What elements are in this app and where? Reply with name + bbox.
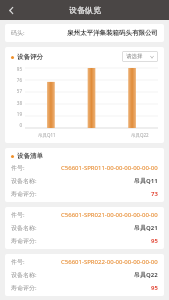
staticText: 95 — [151, 237, 158, 245]
staticText: 38 — [16, 100, 22, 106]
staticText: 95 — [16, 66, 22, 72]
staticText: 件号: — [11, 164, 25, 172]
staticText: 寿命评分: — [11, 237, 37, 245]
staticText: 请选择 — [126, 53, 143, 60]
button[interactable]: Back — [0, 0, 22, 20]
staticText: 57 — [16, 88, 22, 94]
staticText: 设备评分 — [17, 53, 43, 61]
staticText: 吊具Q22 — [134, 271, 158, 279]
staticText: 设备清单 — [17, 152, 43, 160]
staticText: 吊具Q21 — [134, 224, 158, 232]
staticText: 件号: — [11, 258, 25, 266]
staticText: 件号: — [11, 211, 25, 219]
staticText: 吊具Q11 — [134, 177, 158, 185]
staticText: 码头: — [11, 29, 25, 37]
staticText: 95 — [151, 284, 158, 292]
staticText: 设备名称: — [11, 224, 37, 232]
staticText: 设备名称: — [11, 271, 37, 279]
staticText: 泉州太平洋集装箱码头有限公司 — [67, 29, 158, 37]
staticText: 吊具Q22 — [131, 132, 149, 138]
staticText: C56601-SPR022-00-00-00-00-00-00 — [61, 258, 158, 266]
staticText: 寿命评分: — [11, 284, 37, 292]
staticText: 设备名称: — [11, 177, 37, 185]
staticText: 吊具Q11 — [38, 132, 56, 138]
button[interactable]: 请选择 — [122, 51, 158, 62]
button[interactable]: 码头: — [5, 24, 164, 42]
button[interactable]: 件号: — [5, 254, 164, 296]
button[interactable]: 件号: — [5, 207, 164, 249]
staticText: 设备纵览 — [69, 5, 101, 15]
button[interactable]: 设备清单 — [5, 148, 164, 202]
staticText: C56601-SPR011-00-00-00-00-00-00 — [61, 164, 158, 172]
staticText: 76 — [16, 77, 22, 83]
staticText: 0 — [19, 122, 22, 128]
staticText: 73 — [151, 190, 158, 198]
staticText: 寿命评分: — [11, 190, 37, 198]
staticText: C56601-SPR021-00-00-00-00-00-00 — [61, 211, 158, 219]
staticText: 19 — [16, 111, 22, 117]
